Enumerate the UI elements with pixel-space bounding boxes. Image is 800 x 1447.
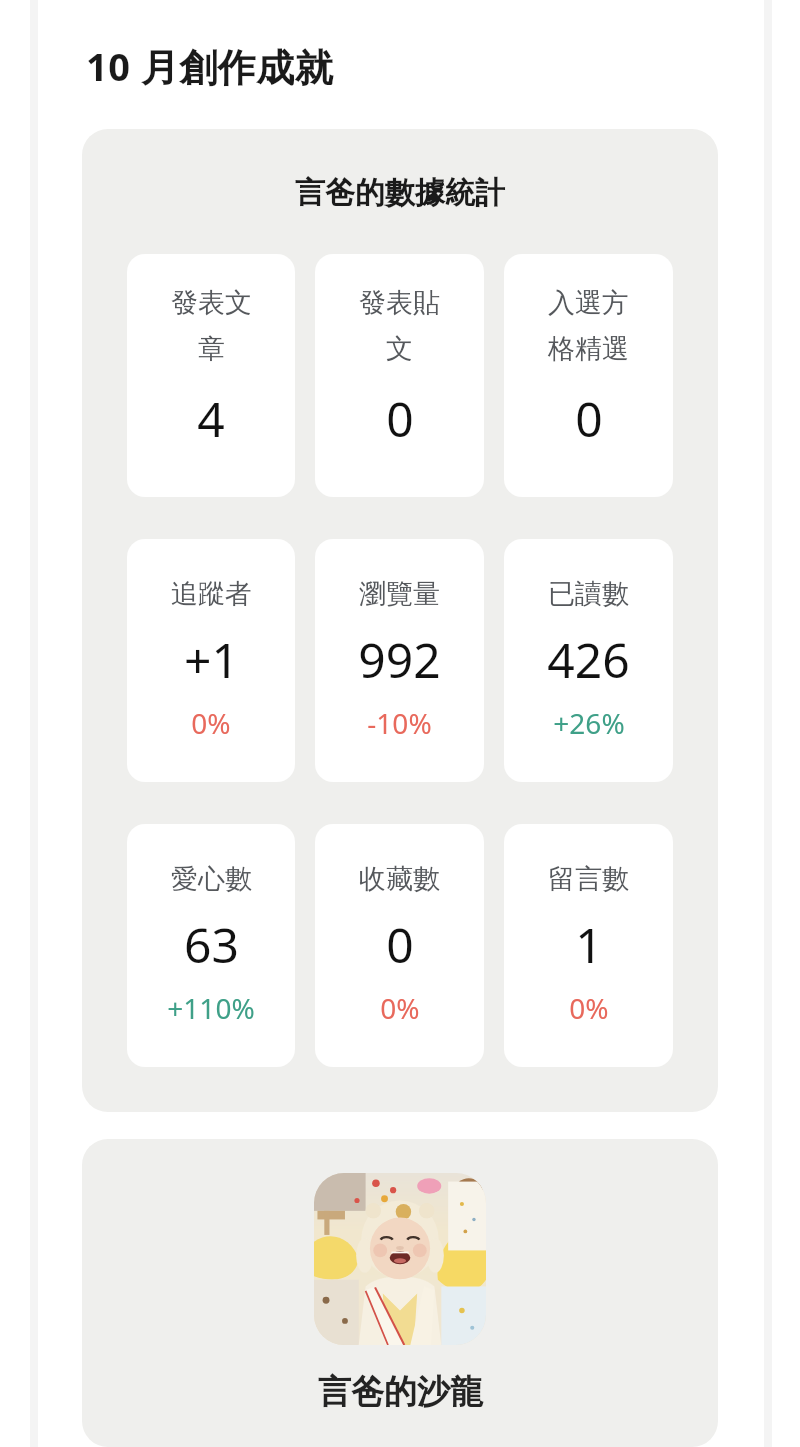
staticText: 0% bbox=[191, 704, 231, 742]
staticText: 言爸的數據統計 bbox=[127, 174, 673, 212]
staticText: 426 bbox=[547, 627, 630, 692]
button[interactable]: 追蹤者 bbox=[127, 539, 295, 782]
button[interactable]: 愛心數 bbox=[127, 824, 295, 1067]
staticText: 992 bbox=[358, 627, 441, 692]
button[interactable]: 發表文 bbox=[127, 254, 295, 497]
staticText: 愛心數 bbox=[171, 862, 252, 896]
staticText: 追蹤者 bbox=[171, 577, 252, 611]
staticText: 0% bbox=[380, 989, 420, 1027]
button[interactable]: 言爸的沙龍 頭像 bbox=[82, 1139, 718, 1447]
staticText: 格精選 bbox=[548, 332, 629, 366]
staticText: 63 bbox=[184, 912, 239, 977]
staticText: +1 bbox=[184, 627, 239, 692]
staticText: +26% bbox=[553, 704, 625, 742]
staticText: 留言數 bbox=[548, 862, 629, 896]
staticText: 收藏數 bbox=[359, 862, 440, 896]
staticText: 0 bbox=[575, 386, 603, 451]
other: 言爸的沙龍 頭像 bbox=[314, 1173, 486, 1345]
staticText: 0 bbox=[386, 386, 414, 451]
button[interactable]: 言爸的數據統計 bbox=[82, 129, 718, 1112]
staticText: 4 bbox=[197, 386, 225, 451]
staticText: 章 bbox=[198, 332, 225, 366]
staticText: 入選方 bbox=[548, 286, 629, 320]
staticText: 文 bbox=[386, 332, 413, 366]
button[interactable]: 入選方 bbox=[504, 254, 673, 497]
staticText: 發表文 bbox=[171, 286, 252, 320]
button[interactable]: 發表貼 bbox=[315, 254, 484, 497]
button[interactable]: 瀏覽量 bbox=[315, 539, 484, 782]
staticText: 10 月創作成就 bbox=[86, 40, 334, 92]
button[interactable]: 收藏數 bbox=[315, 824, 484, 1067]
staticText: 1 bbox=[575, 912, 603, 977]
button[interactable]: 留言數 bbox=[504, 824, 673, 1067]
staticText: -10% bbox=[367, 704, 432, 742]
staticText: 言爸的沙龍 bbox=[318, 1371, 483, 1413]
staticText: 0 bbox=[386, 912, 414, 977]
staticText: 發表貼 bbox=[359, 286, 440, 320]
staticText: +110% bbox=[167, 989, 255, 1027]
staticText: 0% bbox=[569, 989, 609, 1027]
staticText: 已讀數 bbox=[548, 577, 629, 611]
button[interactable]: 已讀數 bbox=[504, 539, 673, 782]
staticText: 瀏覽量 bbox=[359, 577, 440, 611]
